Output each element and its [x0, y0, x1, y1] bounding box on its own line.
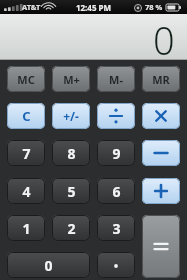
- button[interactable]: 4: [7, 178, 45, 204]
- button[interactable]: 6: [97, 178, 135, 204]
- staticText: 12:45 PM: [0, 2, 187, 13]
- button[interactable]: +/-: [52, 103, 90, 129]
- button[interactable]: 3: [97, 215, 135, 241]
- staticText: 78 %: [145, 2, 163, 12]
- button[interactable]: C: [7, 103, 45, 129]
- button[interactable]: Equals: [142, 215, 180, 278]
- staticText: +/-: [63, 108, 79, 124]
- button[interactable]: MC: [7, 66, 45, 92]
- button[interactable]: MR: [142, 66, 180, 92]
- button[interactable]: 1: [7, 215, 45, 241]
- button[interactable]: Divide: [97, 103, 135, 129]
- staticText: 4: [22, 182, 31, 201]
- button[interactable]: M+: [52, 66, 90, 92]
- staticText: 5: [67, 182, 76, 201]
- staticText: 0: [153, 14, 175, 57]
- staticText: 2: [67, 219, 76, 238]
- button[interactable]: 8: [52, 140, 90, 166]
- staticText: 0: [44, 256, 53, 275]
- button[interactable]: M-: [97, 66, 135, 92]
- staticText: 6: [112, 182, 121, 201]
- staticText: 8: [67, 144, 76, 163]
- button[interactable]: 5: [52, 178, 90, 204]
- button[interactable]: 9: [97, 140, 135, 166]
- staticText: 1: [22, 219, 31, 238]
- button[interactable]: Decimal point: [97, 252, 135, 278]
- button[interactable]: Multiply: [142, 103, 180, 129]
- button[interactable]: 0: [7, 252, 90, 278]
- staticText: MC: [17, 72, 35, 87]
- button[interactable]: 2: [52, 215, 90, 241]
- button[interactable]: Plus: [142, 178, 180, 204]
- button[interactable]: 7: [7, 140, 45, 166]
- staticText: M+: [63, 72, 80, 87]
- staticText: AT&T: [22, 2, 41, 12]
- staticText: MR: [152, 72, 170, 87]
- staticText: C: [22, 107, 31, 125]
- staticText: 3: [112, 219, 121, 238]
- staticText: M-: [109, 72, 123, 87]
- button[interactable]: Minus: [142, 140, 180, 166]
- staticText: 7: [22, 144, 31, 163]
- staticText: 9: [112, 144, 121, 163]
